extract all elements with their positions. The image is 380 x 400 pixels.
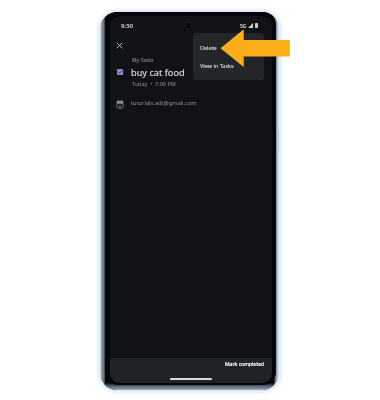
staticText: Mark completed xyxy=(225,361,265,368)
staticText: 9:30 xyxy=(121,22,133,30)
staticText: Delete xyxy=(200,44,217,51)
button[interactable]: Mark completed xyxy=(222,359,268,370)
staticText: 5G xyxy=(240,23,247,30)
button[interactable]: Mark complete xyxy=(110,61,130,82)
staticText: buy cat food xyxy=(131,66,185,79)
staticText: tutorials.adt@gmail.com xyxy=(131,99,197,107)
staticText: View in Tasks xyxy=(200,62,234,69)
button[interactable]: tutorials.adt@gmail.com xyxy=(110,94,272,111)
staticText: My Tasks xyxy=(132,57,154,64)
button[interactable]: View in Tasks xyxy=(193,56,264,75)
button[interactable]: Delete xyxy=(193,38,264,57)
staticText: Today • 7:00 PM xyxy=(132,80,176,87)
button[interactable]: Close xyxy=(110,34,130,56)
